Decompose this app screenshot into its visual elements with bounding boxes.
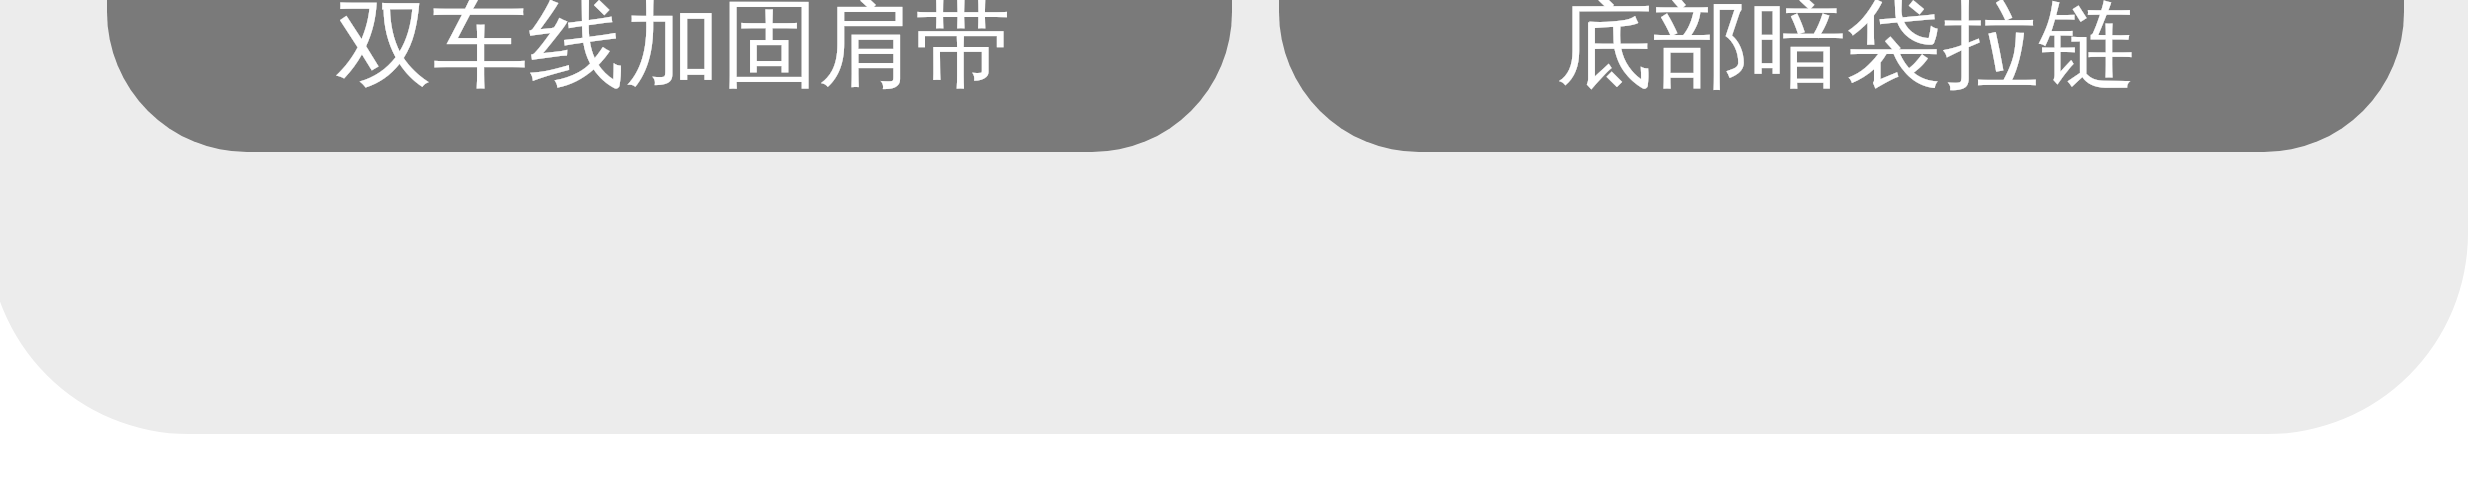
button[interactable]: 底部暗袋拉链 <box>1279 0 2404 152</box>
button[interactable]: 双车线加固肩带 <box>107 0 1232 152</box>
staticText: 双车线加固肩带 <box>335 0 1012 106</box>
staticText: 底部暗袋拉链 <box>1556 0 2136 106</box>
